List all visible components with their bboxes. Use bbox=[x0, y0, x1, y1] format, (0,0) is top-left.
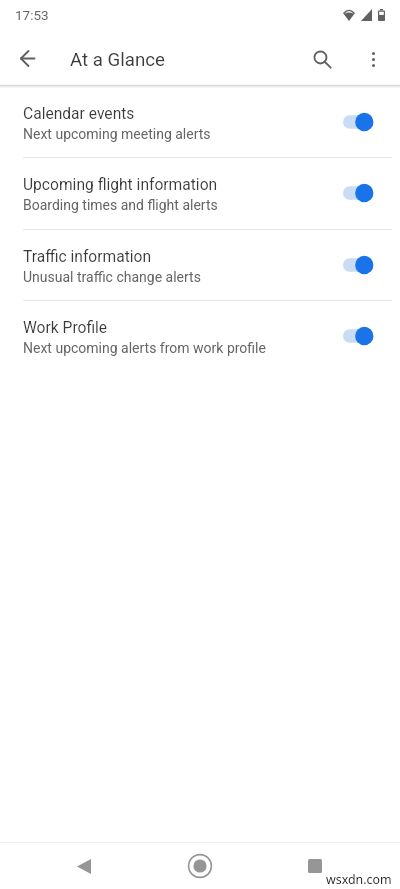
button[interactable]: Work Profile bbox=[0, 300, 400, 371]
button[interactable]: Toggle bbox=[339, 110, 377, 134]
button[interactable]: Toggle bbox=[339, 324, 377, 348]
button[interactable]: Upcoming flight information bbox=[0, 157, 400, 228]
staticText: 17:53 bbox=[15, 7, 49, 23]
staticText: Calendar events bbox=[23, 105, 135, 123]
button[interactable]: Traffic information bbox=[0, 229, 400, 300]
button[interactable]: More options bbox=[356, 42, 390, 76]
staticText: Unusual traffic change alerts bbox=[23, 269, 201, 285]
staticText: Next upcoming meeting alerts bbox=[23, 126, 211, 142]
button[interactable]: Toggle bbox=[339, 181, 377, 205]
button[interactable]: Search bbox=[305, 42, 339, 76]
staticText: wsxdn.com bbox=[326, 871, 392, 888]
staticText: Boarding times and flight alerts bbox=[23, 197, 218, 213]
staticText: Work Profile bbox=[23, 319, 108, 337]
staticText: Upcoming flight information bbox=[23, 176, 218, 194]
button[interactable]: Back bbox=[64, 846, 104, 886]
staticText: Traffic information bbox=[23, 248, 152, 266]
staticText: Next upcoming alerts from work profile bbox=[23, 340, 266, 356]
button[interactable]: Recents bbox=[295, 846, 335, 886]
button[interactable]: Toggle bbox=[339, 253, 377, 277]
button[interactable]: Home bbox=[180, 846, 220, 886]
button[interactable]: Back bbox=[11, 42, 44, 75]
button[interactable]: Calendar events bbox=[0, 86, 400, 157]
staticText: At a Glance bbox=[70, 49, 166, 71]
